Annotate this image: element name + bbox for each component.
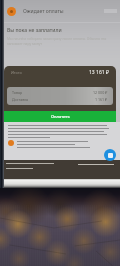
staticText: Вы пока не заплатили [7, 27, 62, 34]
staticText: 12 000 ₽ [93, 90, 108, 95]
staticText: Итого [11, 70, 22, 75]
button[interactable]: Ожидает оплаты [7, 0, 120, 22]
staticText: Товар [12, 90, 23, 95]
staticText: 13 161 ₽ [89, 69, 109, 76]
staticText: Мы начнём собирать заказ сразу после опл… [7, 36, 108, 46]
staticText: Ожидает оплаты [23, 8, 64, 15]
staticText: 1 161 ₽ [95, 97, 108, 102]
staticText: Доставка [12, 97, 29, 102]
staticText: Оплатить [51, 114, 70, 119]
button[interactable]: Оплатить [4, 111, 116, 122]
button[interactable]: Chat with support [104, 149, 116, 161]
